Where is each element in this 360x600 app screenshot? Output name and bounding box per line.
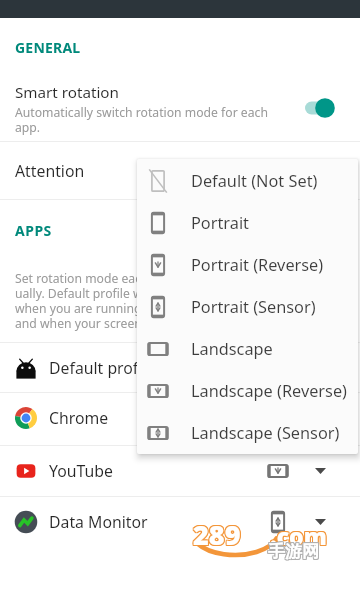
button[interactable]: Default (Not Set) bbox=[137, 160, 358, 202]
staticText: Default profile bbox=[49, 357, 156, 379]
button[interactable]: Smart rotation toggle bbox=[303, 96, 341, 120]
staticText: 289 bbox=[193, 516, 241, 553]
staticText: 289 bbox=[192, 517, 240, 554]
staticText: .com bbox=[271, 521, 328, 552]
button[interactable]: Landscape (Reverse) bbox=[137, 370, 358, 412]
staticText: Landscape (Reverse) bbox=[191, 380, 347, 402]
button[interactable]: Smart rotation bbox=[0, 72, 360, 141]
staticText: Portrait (Reverse) bbox=[191, 254, 324, 276]
staticText: .com bbox=[270, 519, 327, 550]
staticText: 手游网 bbox=[268, 542, 319, 563]
staticText: 289 bbox=[192, 515, 240, 552]
staticText: Landscape bbox=[191, 338, 273, 360]
staticText: 手游网 bbox=[268, 541, 319, 562]
staticText: 手游网 bbox=[269, 541, 320, 562]
staticText: 手游网 bbox=[267, 541, 318, 562]
button[interactable]: Portrait bbox=[137, 202, 358, 244]
staticText: .com bbox=[271, 520, 328, 551]
button[interactable]: Chrome bbox=[0, 393, 360, 442]
staticText: 289 bbox=[194, 516, 242, 553]
staticText: 手游网 bbox=[267, 540, 318, 561]
staticText: Portrait bbox=[191, 212, 249, 234]
staticText: Chrome bbox=[49, 407, 109, 429]
button[interactable]: Landscape (Sensor) bbox=[137, 412, 358, 454]
staticText: 手游网 bbox=[267, 542, 318, 563]
button[interactable]: Data Monitor bbox=[0, 497, 360, 546]
button[interactable]: Expand bbox=[305, 403, 335, 433]
staticText: .com bbox=[269, 521, 326, 552]
staticText: .com bbox=[271, 519, 328, 550]
staticText: Set rotation mode each app individ ually… bbox=[15, 270, 215, 332]
staticText: .com bbox=[270, 520, 327, 551]
button[interactable]: Portrait (Sensor) bbox=[137, 286, 358, 328]
staticText: Default (Not Set) bbox=[191, 170, 318, 192]
staticText: Portrait (Sensor) bbox=[191, 296, 316, 318]
staticText: APPS bbox=[15, 221, 52, 240]
staticText: 289 bbox=[194, 515, 242, 552]
staticText: Data Monitor bbox=[49, 511, 148, 533]
button[interactable]: Expand bbox=[305, 507, 335, 537]
staticText: 289 bbox=[194, 517, 242, 554]
staticText: 289 bbox=[193, 517, 241, 554]
button[interactable]: Expand bbox=[305, 456, 335, 486]
staticText: .com bbox=[269, 519, 326, 550]
button[interactable]: Landscape bbox=[137, 328, 358, 370]
staticText: 手游网 bbox=[269, 540, 320, 561]
staticText: 手游网 bbox=[269, 542, 320, 563]
staticText: Landscape (Sensor) bbox=[191, 422, 340, 444]
staticText: .com bbox=[270, 521, 327, 552]
staticText: 289 bbox=[192, 516, 240, 553]
staticText: Smart rotation bbox=[15, 82, 119, 103]
button[interactable]: Rotation mode bbox=[261, 401, 295, 435]
staticText: 289 bbox=[193, 515, 241, 552]
button[interactable]: Attention bbox=[0, 142, 360, 199]
button[interactable]: Rotation mode bbox=[261, 351, 295, 385]
staticText: .com bbox=[269, 520, 326, 551]
staticText: Attention bbox=[15, 160, 85, 182]
staticText: 手游网 bbox=[268, 540, 319, 561]
staticText: Automatically switch rotation mode for e… bbox=[15, 104, 268, 135]
staticText: GENERAL bbox=[15, 38, 81, 57]
button[interactable]: Rotation mode bbox=[261, 505, 295, 539]
staticText: YouTube bbox=[49, 460, 113, 482]
button[interactable]: Portrait (Reverse) bbox=[137, 244, 358, 286]
button[interactable]: Default profile bbox=[0, 343, 360, 392]
button[interactable]: YouTube bbox=[0, 446, 360, 495]
button[interactable]: Rotation mode bbox=[261, 454, 295, 488]
